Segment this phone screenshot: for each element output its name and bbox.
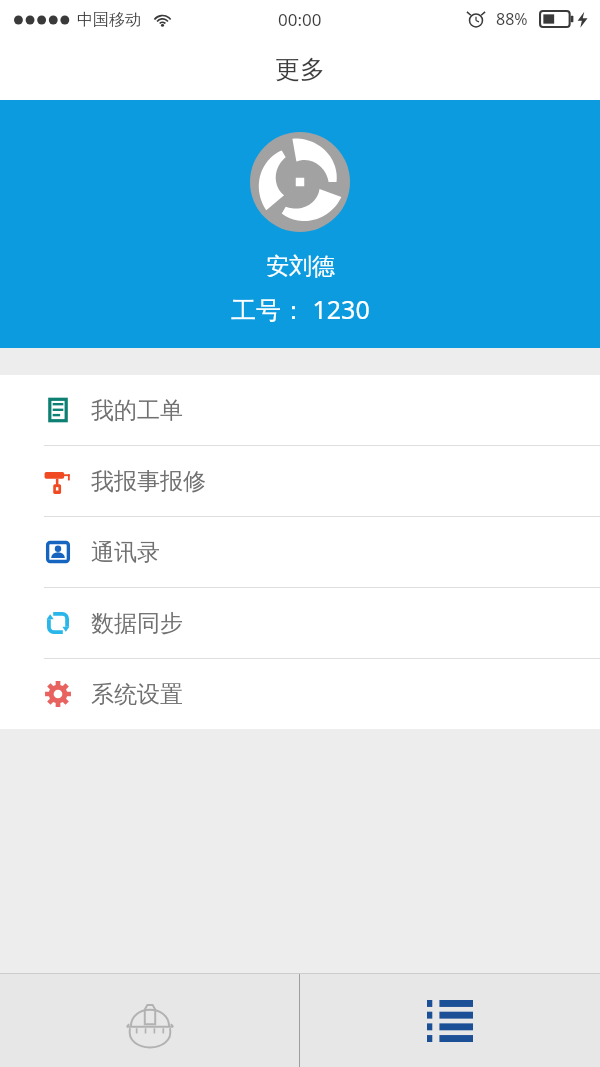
- staticText: 88%: [496, 8, 528, 30]
- staticText: 系统设置: [91, 680, 183, 709]
- staticText: 中国移动: [77, 10, 141, 30]
- staticText: 更多: [275, 54, 325, 85]
- staticText: 我报事报修: [91, 467, 206, 496]
- button[interactable]: 我的工单: [0, 375, 600, 446]
- staticText: 我的工单: [91, 396, 183, 425]
- staticText: 00:00: [278, 8, 322, 31]
- button[interactable]: 更多: [300, 974, 600, 1067]
- button[interactable]: 我报事报修: [0, 446, 600, 517]
- staticText: 通讯录: [91, 538, 160, 567]
- button[interactable]: 工单: [0, 974, 299, 1067]
- staticText: 工号： 1230: [231, 292, 370, 326]
- staticText: 安刘德: [266, 252, 335, 281]
- button[interactable]: 通讯录: [0, 517, 600, 588]
- staticText: 数据同步: [91, 609, 183, 638]
- button[interactable]: 系统设置: [0, 659, 600, 729]
- button[interactable]: 数据同步: [0, 588, 600, 659]
